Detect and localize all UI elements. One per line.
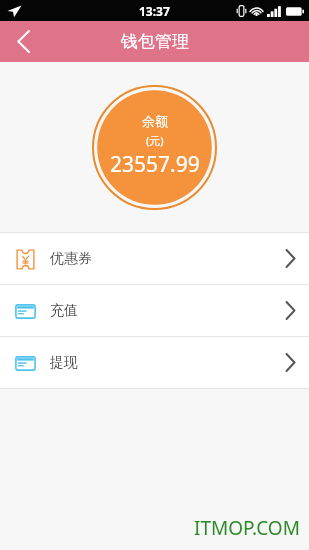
staticText: 优惠券 — [50, 250, 92, 268]
staticText: (元) — [146, 133, 164, 148]
staticText: 充值 — [50, 302, 78, 320]
staticText: ITMOP.COM — [194, 515, 300, 541]
staticText: 余额 — [142, 113, 168, 129]
staticText: 13:37 — [139, 3, 170, 19]
button[interactable]: 提现 — [0, 337, 309, 388]
staticText: 钱包管理 — [121, 31, 189, 52]
button[interactable]: Back — [0, 21, 46, 62]
button[interactable]: 优惠券 — [0, 233, 309, 284]
button[interactable]: 充值 — [0, 285, 309, 336]
staticText: 提现 — [50, 354, 78, 372]
staticText: 23557.99 — [110, 150, 200, 179]
